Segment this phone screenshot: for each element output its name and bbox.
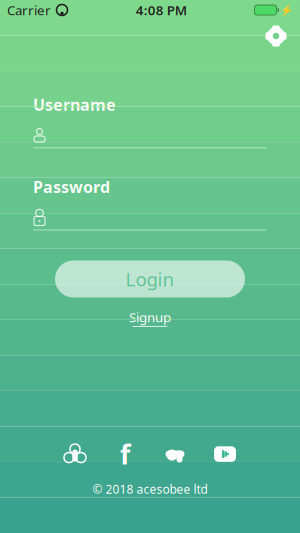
- staticText: ⚡: [280, 4, 293, 16]
- staticText: Password: [33, 176, 110, 197]
- staticText: © 2018 acesobee ltd: [92, 481, 207, 497]
- staticText: f: [120, 436, 130, 472]
- button[interactable]: YouTube: [212, 442, 238, 466]
- button[interactable]: [33, 209, 267, 230]
- staticText: Signup: [129, 308, 171, 326]
- button[interactable]: Login: [55, 260, 245, 297]
- staticText: Login: [125, 267, 174, 291]
- button[interactable]: Facebook: [112, 442, 138, 466]
- staticText: Carrier: [7, 1, 51, 19]
- staticText: Username: [33, 94, 116, 115]
- button[interactable]: Twitter: [162, 442, 188, 466]
- button[interactable]: Settings: [258, 20, 294, 52]
- button[interactable]: Acesobee: [62, 442, 88, 466]
- button[interactable]: Signup: [118, 307, 182, 327]
- staticText: 4:08 PM: [136, 1, 187, 19]
- button[interactable]: [33, 127, 267, 148]
